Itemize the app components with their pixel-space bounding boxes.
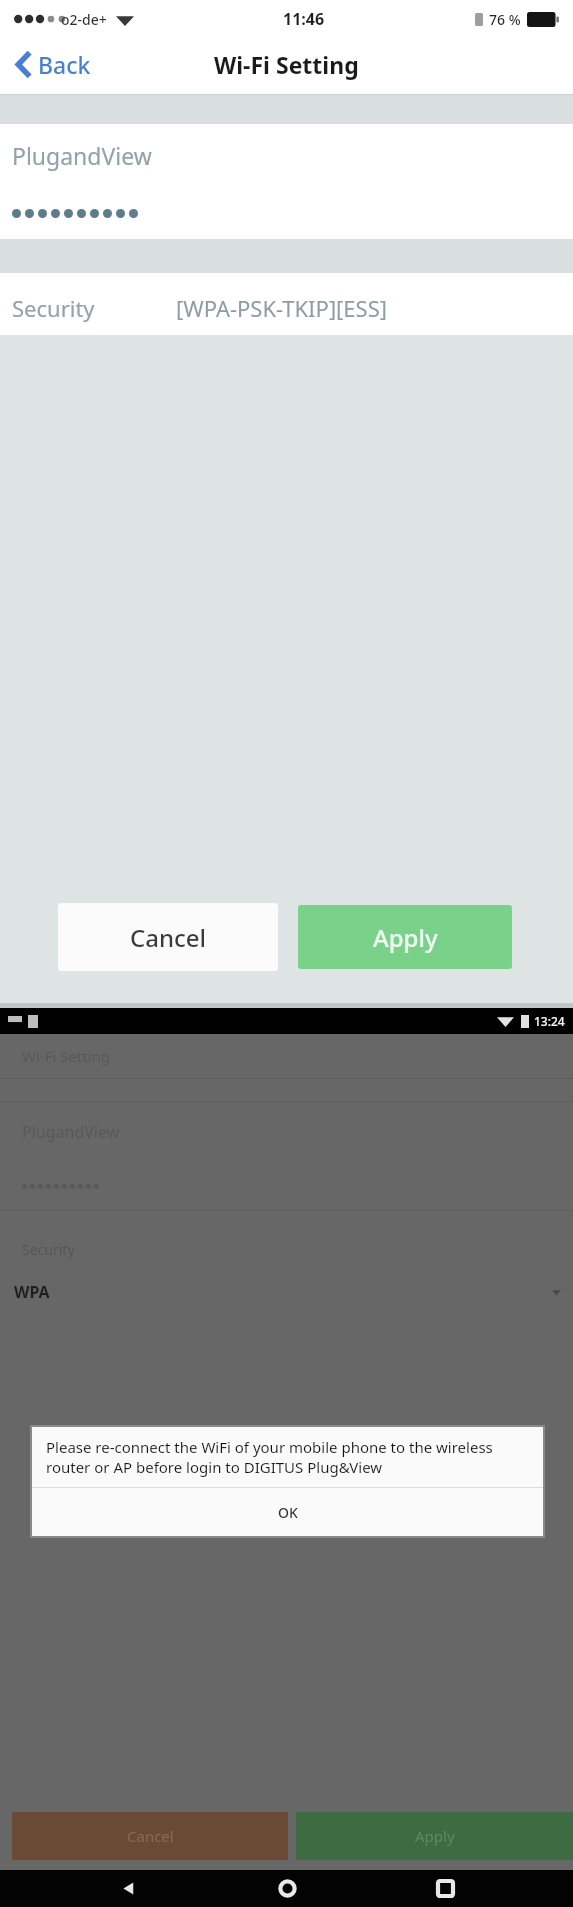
- staticText: PlugandView: [12, 140, 152, 171]
- button[interactable]: Back: [12, 42, 95, 87]
- staticText: Apply: [415, 1826, 455, 1846]
- button[interactable]: [0, 187, 573, 239]
- staticText: Security: [22, 1240, 75, 1259]
- button[interactable]: Apply: [298, 905, 512, 969]
- staticText: [WPA-PSK-TKIP][ESS]: [176, 293, 387, 323]
- staticText: Back: [38, 49, 91, 80]
- staticText: Apply: [373, 921, 438, 954]
- staticText: Wi-Fi Setting: [214, 49, 359, 80]
- staticText: WPA: [14, 1281, 50, 1303]
- staticText: o2-de+: [61, 10, 107, 29]
- button[interactable]: Recent apps: [415, 1870, 475, 1907]
- staticText: 11:46: [283, 8, 325, 30]
- button[interactable]: Security: [0, 281, 573, 335]
- button[interactable]: WPA: [0, 1269, 573, 1315]
- staticText: 13:24: [534, 1013, 565, 1029]
- staticText: PlugandView: [22, 1121, 120, 1143]
- button[interactable]: Cancel: [58, 903, 278, 971]
- staticText: Cancel: [130, 921, 207, 954]
- staticText: Please re-connect the WiFi of your mobil…: [46, 1437, 529, 1477]
- staticText: Cancel: [127, 1826, 174, 1846]
- button[interactable]: PlugandView: [0, 124, 573, 187]
- button[interactable]: Home: [257, 1870, 317, 1907]
- button[interactable]: Back: [98, 1870, 158, 1907]
- staticText: 76 %: [489, 10, 521, 29]
- button[interactable]: OK: [32, 1488, 543, 1536]
- staticText: Security: [12, 293, 95, 323]
- staticText: Wi-Fi Setting: [22, 1046, 111, 1066]
- staticText: OK: [278, 1503, 298, 1522]
